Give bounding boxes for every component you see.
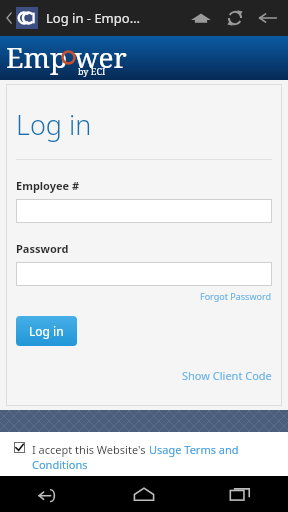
staticText: Employee # bbox=[16, 178, 80, 193]
button[interactable]: Forgot Password bbox=[16, 290, 272, 302]
button[interactable]: Log in bbox=[16, 316, 77, 346]
button[interactable]: Text input bbox=[16, 199, 272, 223]
button[interactable]: Text input bbox=[16, 262, 272, 286]
staticText: Conditions bbox=[32, 457, 88, 472]
staticText: Log in bbox=[29, 323, 64, 339]
button[interactable]: Show Client Code bbox=[16, 368, 272, 383]
staticText: Forgot Password bbox=[200, 290, 272, 302]
staticText: Log in - Empo… bbox=[46, 9, 140, 27]
staticText: Usage Terms and bbox=[149, 442, 239, 457]
staticText: I accept this Website's bbox=[32, 442, 149, 457]
staticText: Log in bbox=[16, 106, 92, 143]
button[interactable]: Home bbox=[190, 10, 212, 26]
button[interactable]: Back chevron bbox=[4, 10, 14, 26]
button[interactable]: Home bbox=[96, 476, 192, 512]
button[interactable]: Back bbox=[0, 476, 96, 512]
button[interactable]: ECI app icon bbox=[16, 7, 38, 29]
staticText: Password bbox=[16, 241, 69, 256]
button[interactable]: Recent apps bbox=[192, 476, 288, 512]
staticText: Show Client Code bbox=[182, 368, 272, 383]
staticText: by ECI bbox=[78, 65, 106, 77]
button[interactable]: Refresh bbox=[226, 9, 244, 27]
button[interactable]: Back bbox=[258, 10, 278, 26]
button[interactable]: I accept this Website's bbox=[14, 442, 276, 472]
staticText: Emp wer bbox=[6, 38, 127, 76]
